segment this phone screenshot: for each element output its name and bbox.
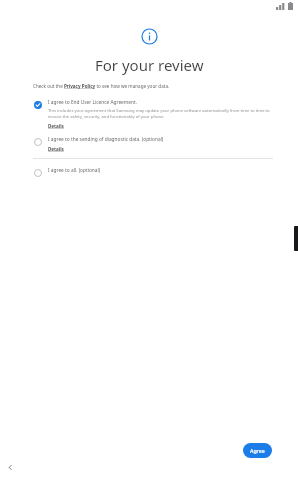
staticText: Agree: [250, 447, 265, 454]
staticText: For your review: [95, 55, 204, 75]
button[interactable]: Details: [48, 146, 64, 152]
staticText: I agree to the sending of diagnostic dat…: [48, 136, 164, 143]
staticText: Check out the Privacy Policy to see how …: [33, 83, 170, 89]
button[interactable]: I agree to the sending of diagnostic dat…: [33, 136, 273, 152]
staticText: This includes your agreement that Samsun…: [48, 108, 273, 120]
button[interactable]: I agree to all. (optional): [33, 167, 273, 176]
other: Information: [141, 28, 158, 45]
staticText: I agree to End User Licence Agreement.: [48, 99, 137, 106]
staticText: I agree to all. (optional): [48, 167, 101, 174]
button[interactable]: Agree: [243, 443, 272, 458]
staticText: Details: [48, 146, 64, 152]
button[interactable]: I agree to End User Licence Agreement.: [33, 99, 273, 129]
button[interactable]: Back: [4, 461, 16, 473]
staticText: Details: [48, 123, 64, 129]
button[interactable]: Details: [48, 123, 64, 129]
